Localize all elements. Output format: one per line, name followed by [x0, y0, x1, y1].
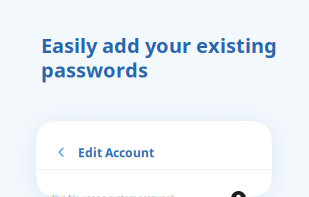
- staticText: Easily add your existing passwords: [41, 32, 277, 83]
- staticText: This file uses a custom password: [51, 193, 174, 197]
- button[interactable]: Edit Account: [36, 121, 272, 169]
- staticText: Edit Account: [78, 144, 154, 160]
